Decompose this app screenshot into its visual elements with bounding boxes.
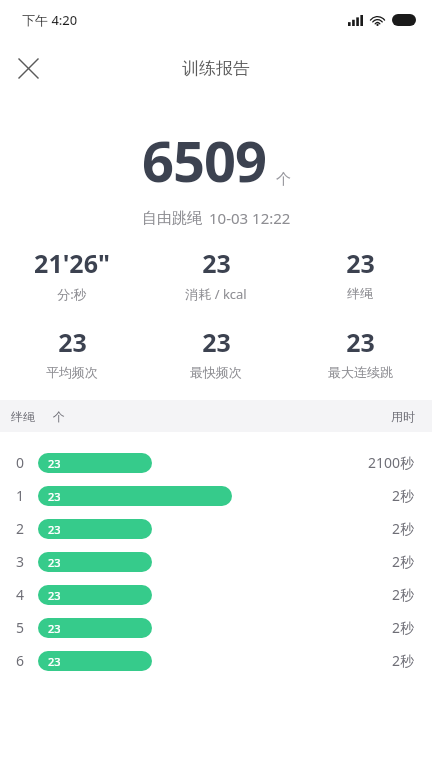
staticText: 2秒 bbox=[392, 486, 415, 505]
staticText: 23 bbox=[48, 621, 61, 636]
button[interactable]: 0 bbox=[0, 446, 432, 479]
staticText: 2 bbox=[16, 519, 25, 538]
staticText: 分:秒 bbox=[57, 285, 87, 303]
staticText: 23 bbox=[48, 522, 61, 537]
staticText: 23 bbox=[58, 325, 87, 359]
staticText: 23 bbox=[346, 246, 375, 280]
button[interactable]: 5 bbox=[0, 611, 432, 644]
staticText: 21'26" bbox=[34, 246, 110, 280]
staticText: 6 bbox=[16, 651, 25, 670]
staticText: 10-03 12:22 bbox=[209, 208, 291, 228]
staticText: 0 bbox=[16, 453, 25, 472]
staticText: 训练报告 bbox=[182, 58, 250, 79]
button[interactable]: Close bbox=[8, 48, 48, 88]
staticText: 6509 bbox=[142, 122, 267, 198]
staticText: 23 bbox=[48, 489, 61, 504]
button[interactable]: 1 bbox=[0, 479, 432, 512]
staticText: 23 bbox=[202, 325, 231, 359]
staticText: 4 bbox=[16, 585, 25, 604]
staticText: 23 bbox=[48, 588, 61, 603]
staticText: 23 bbox=[346, 325, 375, 359]
staticText: 个 bbox=[276, 170, 291, 189]
staticText: 最快频次 bbox=[190, 364, 242, 380]
button[interactable]: 6 bbox=[0, 644, 432, 677]
staticText: 个 bbox=[53, 409, 65, 424]
staticText: 消耗 / kcal bbox=[185, 285, 247, 303]
staticText: 23 bbox=[202, 246, 231, 280]
button[interactable]: 4 bbox=[0, 578, 432, 611]
staticText: 2秒 bbox=[392, 618, 415, 637]
staticText: 2100秒 bbox=[368, 453, 415, 472]
staticText: 自由跳绳 bbox=[142, 209, 202, 228]
staticText: 2秒 bbox=[392, 552, 415, 571]
staticText: 23 bbox=[48, 654, 61, 669]
button[interactable]: 3 bbox=[0, 545, 432, 578]
staticText: 1 bbox=[16, 486, 25, 505]
staticText: 绊绳 bbox=[347, 285, 373, 301]
staticText: 5 bbox=[16, 618, 25, 637]
button[interactable]: 2 bbox=[0, 512, 432, 545]
staticText: 下午 4:20 bbox=[22, 11, 78, 29]
staticText: 用时 bbox=[391, 409, 415, 424]
staticText: 2秒 bbox=[392, 651, 415, 670]
staticText: 最大连续跳 bbox=[328, 364, 393, 380]
staticText: 绊绳 bbox=[11, 409, 35, 424]
staticText: 2秒 bbox=[392, 585, 415, 604]
staticText: 23 bbox=[48, 555, 61, 570]
staticText: 3 bbox=[16, 552, 25, 571]
staticText: 2秒 bbox=[392, 519, 415, 538]
staticText: 23 bbox=[48, 456, 61, 471]
staticText: 平均频次 bbox=[46, 364, 98, 380]
